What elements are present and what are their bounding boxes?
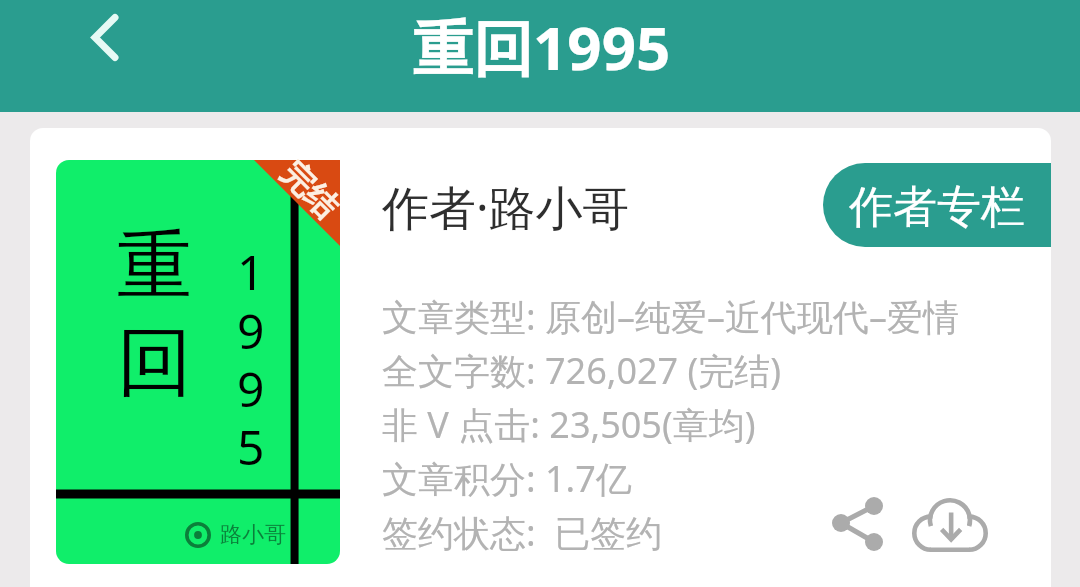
staticText: 文章类型: 原创–纯爱–近代现代–爱情 — [382, 292, 960, 341]
staticText: 完结 — [273, 153, 346, 227]
staticText: 文章积分: 1.7亿 — [382, 454, 632, 503]
button[interactable]: 作者专栏 — [823, 163, 1051, 247]
staticText: 非 V 点击: 23,505(章均) — [382, 400, 756, 449]
staticText: 作者专栏 — [849, 180, 1025, 235]
staticText: 作者·路小哥 — [382, 175, 630, 239]
staticText: 重回1995 — [413, 6, 671, 88]
button[interactable]: Book cover 重回1995 — [56, 160, 340, 564]
button[interactable]: Back — [78, 2, 152, 76]
button[interactable]: Download — [912, 498, 988, 552]
staticText: 签约状态: 已签约 — [382, 508, 663, 557]
staticText: 1 9 9 5 — [237, 239, 265, 479]
staticText: 全文字数: 726,027 (完结) — [382, 346, 782, 395]
staticText: 重 回 — [117, 219, 192, 411]
staticText: 路小哥 — [220, 521, 286, 549]
button[interactable]: Share — [823, 488, 893, 562]
